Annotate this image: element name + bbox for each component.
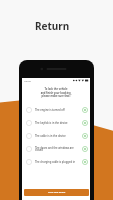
button[interactable]: Lock and finish	[24, 189, 89, 196]
staticText: The doors and the windows are closed	[35, 146, 80, 152]
button[interactable]: The engine is turned off	[22, 103, 90, 116]
staticText: The keyfob is in the device	[35, 121, 80, 125]
staticText: The charging cable is plugged in	[35, 160, 80, 164]
staticText: The cable is in the device	[35, 134, 80, 138]
button[interactable]: The charging cable is plugged in	[22, 155, 90, 168]
staticText: Lock and finish	[48, 191, 66, 194]
button[interactable]: The doors and the windows are closed	[22, 142, 90, 155]
staticText: Home	[24, 79, 31, 82]
staticText: To lock the vehicle and finish your book…	[25, 87, 87, 98]
button[interactable]: The cable is in the device	[22, 129, 90, 142]
staticText: The engine is turned off	[35, 108, 80, 112]
staticText: Return	[35, 19, 70, 33]
button[interactable]: The keyfob is in the device	[22, 116, 90, 129]
